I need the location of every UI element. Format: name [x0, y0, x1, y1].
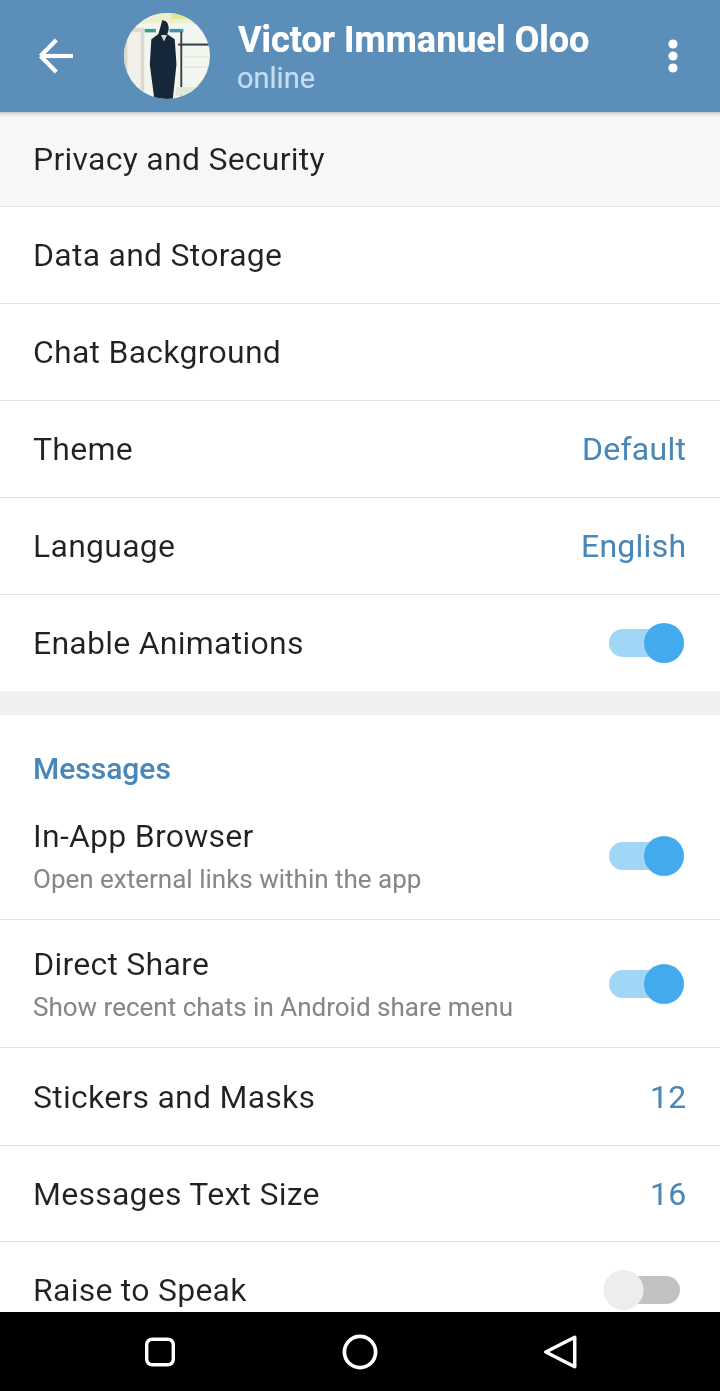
staticText: Show recent chats in Android share menu: [33, 992, 513, 1022]
button[interactable]: Stickers and Masks: [0, 1048, 720, 1145]
staticText: In-App Browser: [33, 817, 254, 855]
staticText: English: [581, 527, 687, 565]
button[interactable]: Home: [320, 1312, 400, 1391]
button[interactable]: Data and Storage: [0, 207, 720, 303]
staticText: online: [237, 61, 316, 95]
staticText: Open external links within the app: [33, 864, 422, 894]
staticText: Default: [582, 430, 687, 468]
button[interactable]: In-App Browser: [0, 792, 720, 919]
staticText: Victor Immanuel Oloo: [238, 19, 590, 61]
staticText: 12: [650, 1078, 687, 1116]
staticText: Privacy and Security: [33, 140, 325, 178]
staticText: Language: [33, 527, 176, 565]
button[interactable]: Recent apps: [120, 1312, 200, 1391]
staticText: Stickers and Masks: [33, 1078, 316, 1116]
button[interactable]: Direct Share: [0, 920, 720, 1047]
button[interactable]: Back: [520, 1312, 600, 1391]
staticText: Direct Share: [33, 945, 209, 983]
button[interactable]: Raise to Speak: [0, 1242, 720, 1312]
staticText: Theme: [33, 430, 133, 468]
button[interactable]: Profile photo: [124, 13, 210, 99]
button[interactable]: More options: [640, 23, 706, 89]
button[interactable]: Back: [24, 23, 90, 89]
button[interactable]: Language: [0, 498, 720, 594]
staticText: Raise to Speak: [33, 1271, 247, 1309]
staticText: 16: [650, 1175, 687, 1213]
button[interactable]: Enable Animations: [0, 595, 720, 691]
button[interactable]: Messages Text Size: [0, 1146, 720, 1241]
button[interactable]: Theme: [0, 401, 720, 497]
staticText: Enable Animations: [33, 624, 304, 662]
button[interactable]: Privacy and Security: [0, 112, 720, 206]
button[interactable]: Chat Background: [0, 304, 720, 400]
staticText: Messages Text Size: [33, 1175, 320, 1213]
staticText: Data and Storage: [33, 236, 283, 274]
staticText: Chat Background: [33, 333, 282, 371]
staticText: Messages: [33, 751, 171, 786]
